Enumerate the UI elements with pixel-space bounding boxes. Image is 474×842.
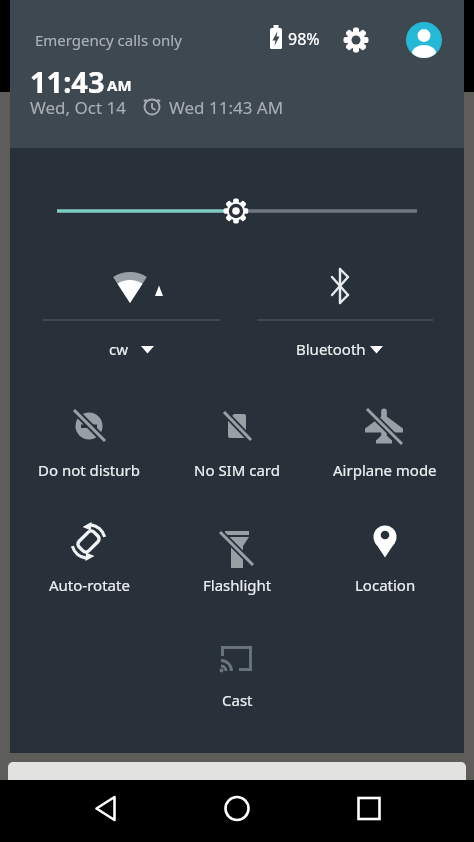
button[interactable] — [163, 395, 311, 495]
staticText: Wed 11:43 AM — [169, 96, 284, 119]
button[interactable] — [40, 250, 230, 365]
staticText: Cast — [222, 690, 253, 710]
staticText: cw — [109, 339, 128, 359]
staticText: AM — [107, 75, 132, 95]
staticText: Auto-rotate — [49, 575, 130, 595]
button[interactable] — [163, 510, 311, 610]
staticText: No SIM card — [194, 460, 280, 480]
button[interactable] — [202, 783, 272, 839]
staticText: Airplane mode — [333, 460, 437, 480]
staticText: Do not disturb — [38, 460, 140, 480]
staticText: Bluetooth — [296, 339, 366, 359]
button[interactable] — [15, 510, 163, 610]
button[interactable] — [70, 783, 140, 839]
button[interactable] — [250, 250, 440, 365]
staticText: Flashlight — [203, 575, 272, 595]
button[interactable] — [334, 783, 404, 839]
button[interactable] — [311, 395, 459, 495]
staticText: 98% — [288, 28, 320, 50]
button[interactable] — [311, 510, 459, 610]
staticText: 11:43 — [30, 62, 105, 94]
button[interactable] — [15, 395, 163, 495]
button[interactable] — [406, 22, 442, 58]
staticText: Location — [355, 575, 416, 595]
staticText: Emergency calls only — [35, 30, 182, 50]
button[interactable] — [163, 630, 311, 720]
staticText: Wed, Oct 14 — [30, 96, 126, 119]
button[interactable] — [340, 24, 372, 56]
